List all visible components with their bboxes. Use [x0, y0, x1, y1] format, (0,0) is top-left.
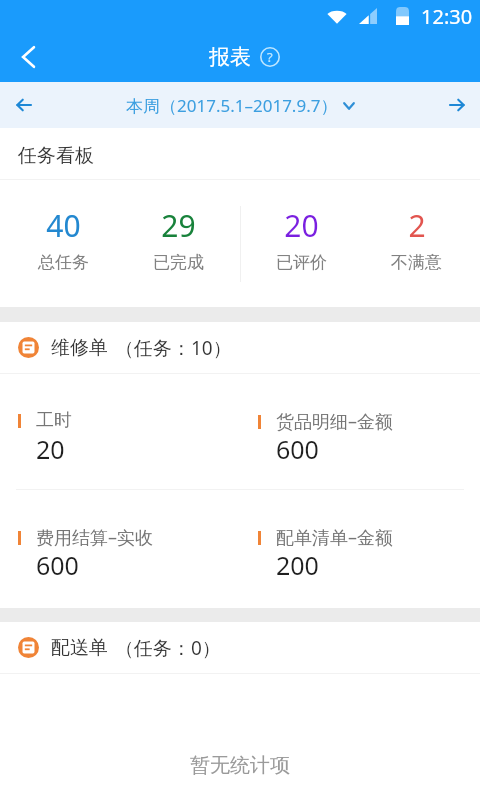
staticText: 配单清单–金额	[276, 525, 393, 550]
button[interactable]: Help	[259, 46, 281, 68]
staticText: 本周（2017.5.1–2017.9.7）	[126, 94, 338, 117]
staticText: 2	[408, 205, 426, 246]
button[interactable]: 配单清单–金额	[240, 490, 480, 608]
staticText: 报表	[209, 44, 251, 70]
staticText: 不满意	[391, 252, 442, 273]
staticText: 20	[36, 432, 65, 466]
staticText: 200	[276, 548, 319, 582]
staticText: 暂无统计项	[190, 753, 290, 778]
staticText: 600	[36, 548, 79, 582]
button[interactable]: 工时	[0, 374, 240, 489]
staticText: 已完成	[153, 252, 204, 273]
button[interactable]: 40	[6, 180, 121, 307]
staticText: 20	[284, 205, 319, 246]
staticText: 总任务	[38, 252, 89, 273]
button[interactable]: 费用结算–实收	[0, 490, 240, 608]
button[interactable]: 本周（2017.5.1–2017.9.7）	[126, 94, 355, 117]
staticText: 工时	[36, 409, 72, 432]
button[interactable]: Next period	[434, 82, 480, 128]
staticText: 维修单	[51, 336, 108, 360]
staticText: 600	[276, 432, 319, 466]
staticText: 29	[161, 205, 196, 246]
staticText: 配送单	[51, 636, 108, 660]
staticText: ?	[267, 48, 273, 66]
staticText: （任务：10）	[115, 335, 232, 361]
button[interactable]: 2	[359, 180, 474, 307]
staticText: 费用结算–实收	[36, 525, 153, 550]
button[interactable]: 配送单	[0, 622, 480, 673]
button[interactable]: 29	[121, 180, 236, 307]
button[interactable]: Previous period	[0, 82, 46, 128]
button[interactable]: Back	[0, 32, 54, 82]
button[interactable]: 20	[244, 180, 359, 307]
staticText: 40	[46, 205, 81, 246]
staticText: 12:30	[421, 3, 473, 30]
button[interactable]: 货品明细–金额	[240, 374, 480, 489]
staticText: 货品明细–金额	[276, 409, 393, 434]
staticText: 已评价	[276, 252, 327, 273]
button[interactable]: 维修单	[0, 322, 480, 373]
staticText: 任务看板	[18, 144, 94, 168]
staticText: （任务：0）	[115, 635, 221, 661]
